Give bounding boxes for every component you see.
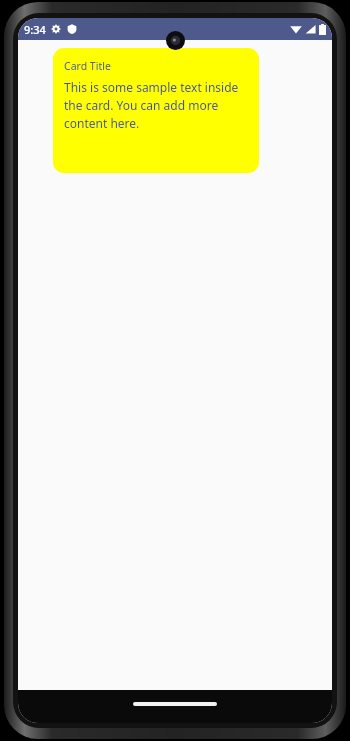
staticText: 9:34 (24, 22, 46, 37)
button[interactable]: Home gesture (133, 702, 217, 706)
button[interactable]: Card Title (53, 48, 259, 173)
staticText: This is some sample text inside the card… (64, 79, 249, 132)
staticText: Card Title (64, 59, 111, 73)
